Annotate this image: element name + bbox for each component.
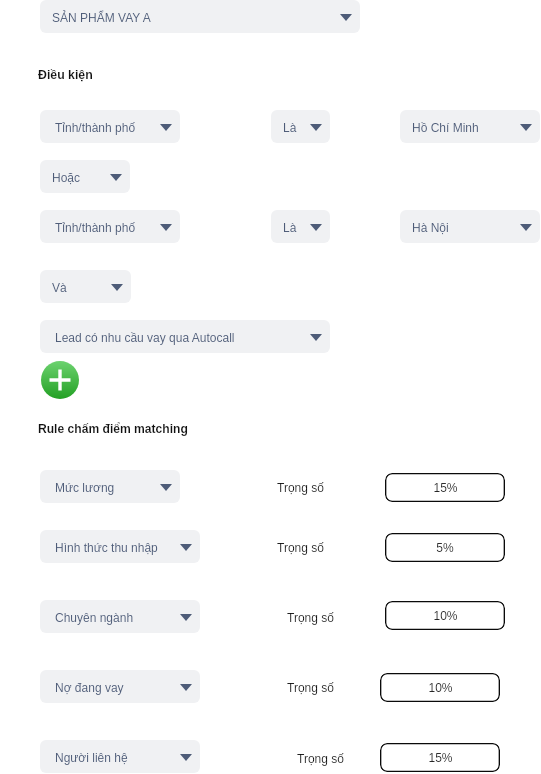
button[interactable]: Hà Nội [400,210,540,243]
staticText: Và [52,281,67,294]
staticText: Là [283,121,297,134]
button[interactable]: Mức lương [40,470,180,503]
button[interactable]: Là [271,110,330,143]
button[interactable]: 15% [380,743,500,772]
staticText: Trọng số [297,752,344,765]
staticText: Điều kiện [38,68,93,82]
staticText: Là [283,221,297,234]
staticText: Hình thức thu nhập [55,541,158,554]
button[interactable]: Tỉnh/thành phố [40,210,180,243]
staticText: Trọng số [287,611,334,624]
staticText: Chuyên ngành [55,611,134,624]
button[interactable]: Lead có nhu cầu vay qua Autocall [40,320,330,353]
staticText: 5% [436,541,454,554]
staticText: Người liên hệ [55,751,128,764]
staticText: Tỉnh/thành phố [55,221,136,234]
button[interactable]: 10% [385,601,505,630]
staticText: 10% [428,681,453,694]
staticText: Tỉnh/thành phố [55,121,136,134]
staticText: SẢN PHẨM VAY A [52,11,151,24]
staticText: Trọng số [277,541,324,554]
button[interactable]: 5% [385,533,505,562]
button[interactable]: Tỉnh/thành phố [40,110,180,143]
staticText: Lead có nhu cầu vay qua Autocall [55,331,235,344]
button[interactable]: Add condition [41,361,79,399]
staticText: Nợ đang vay [55,681,124,694]
staticText: Rule chấm điểm matching [38,422,188,436]
staticText: Hà Nội [412,221,449,234]
button[interactable]: Là [271,210,330,243]
button[interactable]: Và [40,270,131,303]
staticText: Hoặc [52,171,81,184]
staticText: 15% [428,751,453,764]
button[interactable]: Người liên hệ [40,740,200,773]
button[interactable]: Hồ Chí Minh [400,110,540,143]
button[interactable]: Hình thức thu nhập [40,530,200,563]
button[interactable]: Hoặc [40,160,130,193]
button[interactable]: Nợ đang vay [40,670,200,703]
button[interactable]: SẢN PHẨM VAY A [40,0,360,33]
staticText: Trọng số [277,481,324,494]
staticText: Hồ Chí Minh [412,121,479,134]
staticText: Trọng số [287,681,334,694]
staticText: 10% [433,609,458,622]
button[interactable]: 10% [380,673,500,702]
button[interactable]: Chuyên ngành [40,600,200,633]
staticText: 15% [433,481,458,494]
staticText: Mức lương [55,481,115,494]
button[interactable]: 15% [385,473,505,502]
